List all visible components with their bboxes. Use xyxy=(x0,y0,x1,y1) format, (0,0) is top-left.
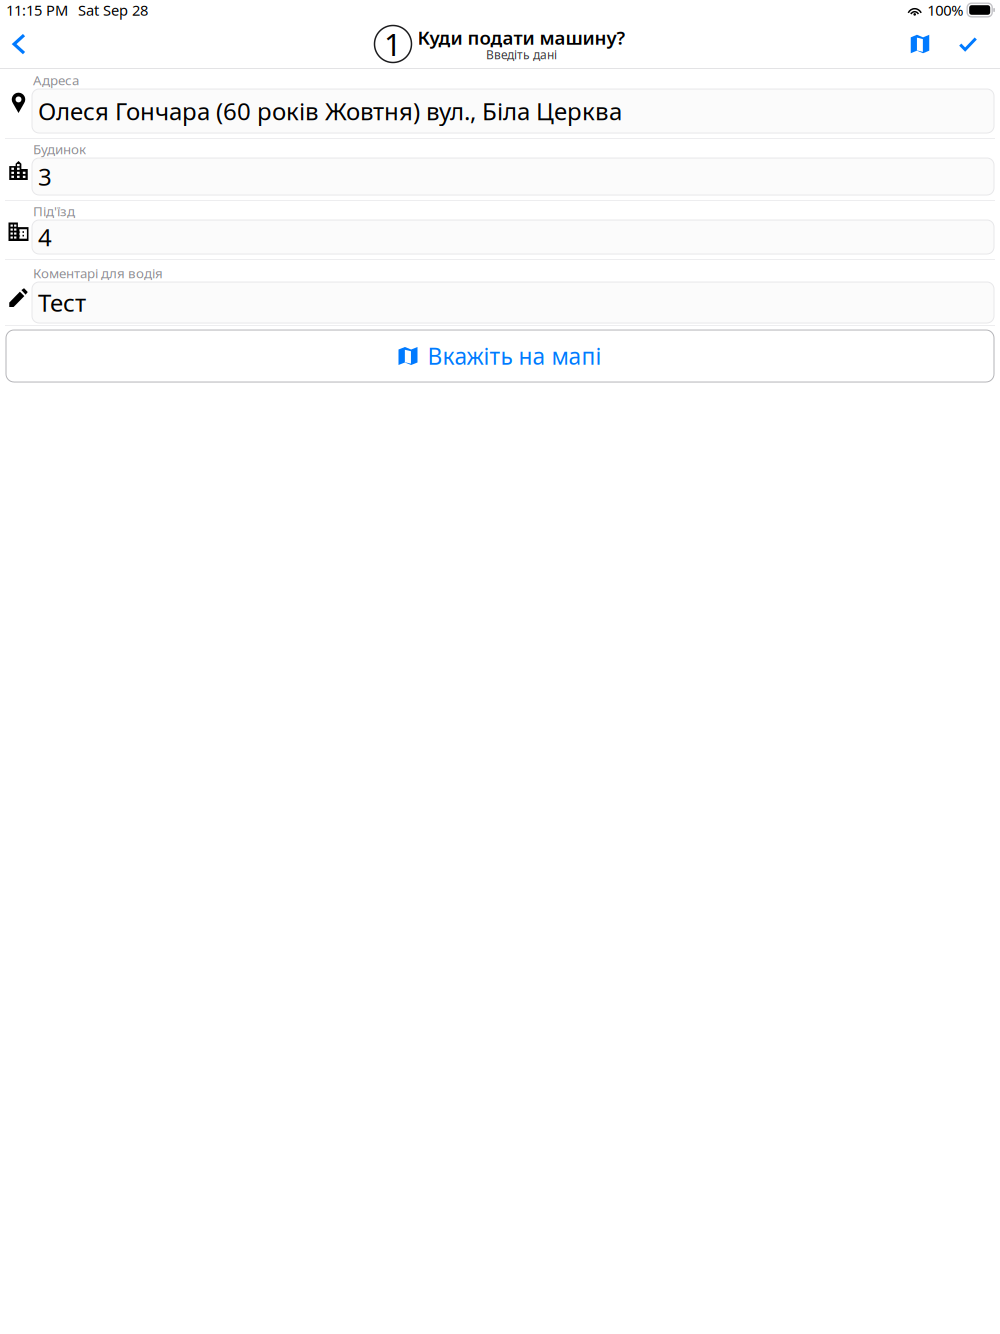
button[interactable]: Done xyxy=(946,22,990,66)
staticText: 4 xyxy=(38,221,52,253)
staticText: Тест xyxy=(38,287,86,318)
staticText: 1 xyxy=(384,24,402,64)
staticText: Будинок xyxy=(33,140,86,158)
button[interactable]: Вкажіть на мапі xyxy=(6,330,994,382)
staticText: Sat Sep 28 xyxy=(78,0,148,20)
button[interactable]: Back xyxy=(0,22,38,66)
staticText: Введіть дані xyxy=(486,46,557,62)
button[interactable]: Show map xyxy=(894,22,946,66)
staticText: Куди подати машину? xyxy=(417,25,625,50)
staticText: 11:15 PM xyxy=(6,0,68,20)
staticText: Коментарі для водія xyxy=(33,264,163,282)
staticText: Адреса xyxy=(33,71,79,89)
staticText: Вкажіть на мапі xyxy=(427,341,601,371)
staticText: Під'їзд xyxy=(33,202,75,220)
staticText: 100% xyxy=(927,0,963,20)
staticText: 3 xyxy=(38,161,52,192)
staticText: Олеся Гончара (60 років Жовтня) вул., Бі… xyxy=(38,95,622,127)
